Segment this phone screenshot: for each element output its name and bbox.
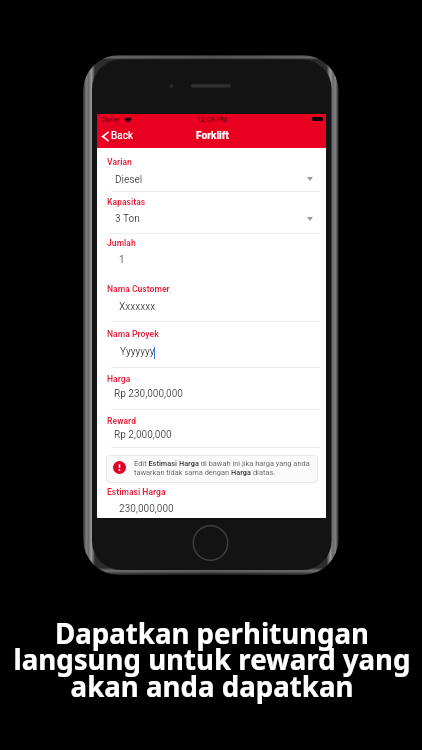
button[interactable] [97, 367, 326, 409]
staticText: Estimasi Harga [107, 487, 166, 497]
staticText: 1 [119, 254, 125, 266]
button[interactable] [106, 455, 318, 483]
staticText: 3 Ton [115, 213, 140, 225]
staticText: Edit Estimasi Harga di bawah ini jika ha… [134, 459, 314, 476]
button[interactable] [97, 233, 326, 278]
staticText: Rp 230,000,000 [114, 388, 183, 400]
button[interactable] [97, 485, 326, 517]
staticText: Reward [107, 416, 137, 426]
staticText: 12:03 PM [197, 116, 228, 124]
staticText: Back [111, 130, 133, 142]
staticText: Harga [107, 374, 131, 384]
staticText: Dapatkan perhitungan langsung untuk rewa… [1, 614, 422, 705]
staticText: Kapasitas [107, 197, 146, 207]
button[interactable] [97, 148, 326, 191]
staticText: Varian [107, 157, 132, 167]
staticText: Carrier [101, 116, 121, 124]
staticText: 230,000,000 [119, 503, 174, 515]
staticText: Yyyyyyy [120, 346, 155, 358]
staticText: Forklift [196, 130, 229, 142]
staticText: Jumlah [107, 238, 136, 248]
staticText: Diesel [115, 174, 143, 186]
button[interactable] [97, 278, 326, 321]
button[interactable] [97, 191, 326, 233]
button[interactable] [97, 409, 326, 447]
staticText: Nama Customer [107, 284, 170, 294]
button[interactable]: Back [99, 125, 136, 147]
staticText: Xxxxxxx [119, 301, 156, 313]
button[interactable] [97, 322, 326, 366]
staticText: Rp 2,000,000 [114, 429, 172, 441]
staticText: Nama Proyek [107, 329, 159, 339]
